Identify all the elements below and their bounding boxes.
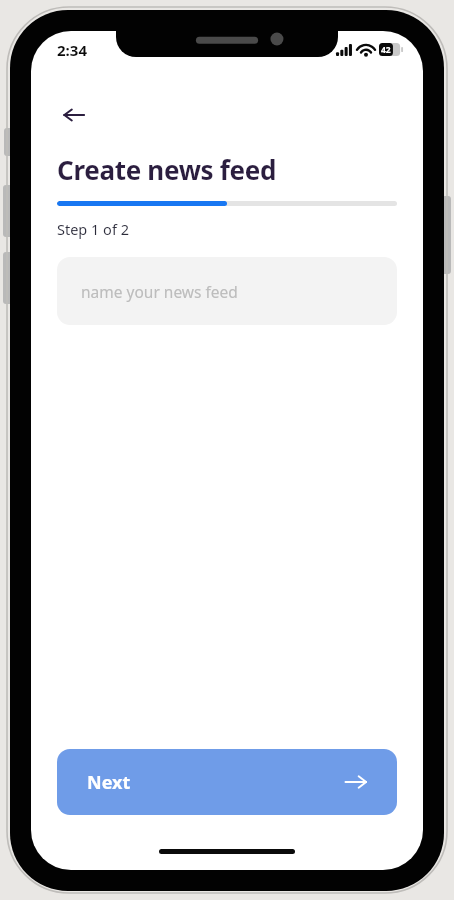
staticText: 42 (381, 44, 391, 56)
staticText: Next (87, 770, 131, 795)
staticText: Step 1 of 2 (57, 219, 129, 239)
staticText: Create news feed (57, 152, 277, 187)
button[interactable]: name your news feed (57, 257, 397, 325)
button[interactable]: Back (51, 92, 97, 138)
staticText: 2:34 (57, 40, 87, 60)
staticText: name your news feed (81, 281, 238, 302)
button[interactable]: Next (57, 749, 397, 815)
